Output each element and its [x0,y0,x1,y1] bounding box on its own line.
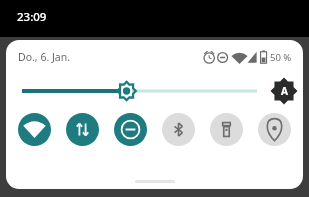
button[interactable]: Location [258,113,291,146]
other: Status icons [202,51,268,64]
staticText: 50 % [270,51,292,64]
button[interactable]: Auto brightness [269,76,299,106]
button[interactable]: Flashlight [210,113,243,146]
button[interactable]: Do., 6. Jan. [18,50,70,64]
button[interactable]: Brightness [22,77,257,105]
staticText: 23:09 [17,9,47,25]
button[interactable]: Bluetooth [162,113,195,146]
button[interactable]: Mobile data [66,113,99,146]
button[interactable]: Wi-Fi [18,113,51,146]
staticText: A [281,84,288,98]
button[interactable]: Do not disturb [114,113,147,146]
